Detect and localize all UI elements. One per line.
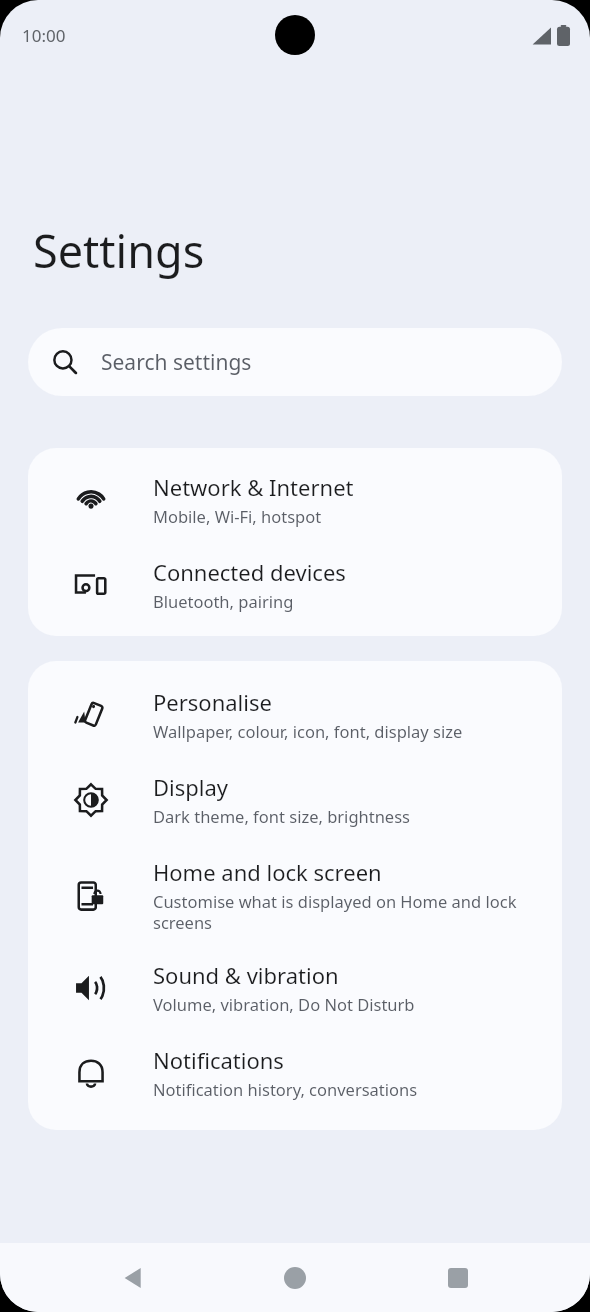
- staticText: Notification history, conversations: [153, 1078, 418, 1100]
- staticText: Sound & vibration: [153, 960, 339, 990]
- button[interactable]: Display: [28, 772, 562, 827]
- button[interactable]: Notifications: [28, 1045, 562, 1100]
- staticText: Home and lock screen: [153, 857, 382, 887]
- button[interactable]: Recent apps: [428, 1248, 488, 1308]
- button[interactable]: Back: [103, 1248, 163, 1308]
- button[interactable]: Personalise: [28, 687, 562, 742]
- staticText: Volume, vibration, Do Not Disturb: [153, 993, 415, 1015]
- button[interactable]: Network & Internet: [28, 472, 562, 527]
- staticText: Connected devices: [153, 557, 346, 587]
- staticText: Customise what is displayed on Home and …: [153, 890, 538, 934]
- staticText: Dark theme, font size, brightness: [153, 805, 410, 827]
- staticText: Network & Internet: [153, 472, 354, 502]
- staticText: Display: [153, 772, 229, 802]
- button[interactable]: Search settings: [28, 328, 562, 396]
- staticText: Mobile, Wi-Fi, hotspot: [153, 505, 322, 527]
- staticText: 10:00: [22, 24, 66, 47]
- staticText: Notifications: [153, 1045, 284, 1075]
- staticText: Settings: [33, 220, 205, 281]
- staticText: Personalise: [153, 687, 272, 717]
- staticText: Search settings: [101, 348, 252, 377]
- button[interactable]: Connected devices: [28, 557, 562, 612]
- button[interactable]: Home: [265, 1248, 325, 1308]
- staticText: Wallpaper, colour, icon, font, display s…: [153, 720, 463, 742]
- button[interactable]: Home and lock screen: [28, 857, 562, 934]
- button[interactable]: Sound & vibration: [28, 960, 562, 1015]
- staticText: Bluetooth, pairing: [153, 590, 294, 612]
